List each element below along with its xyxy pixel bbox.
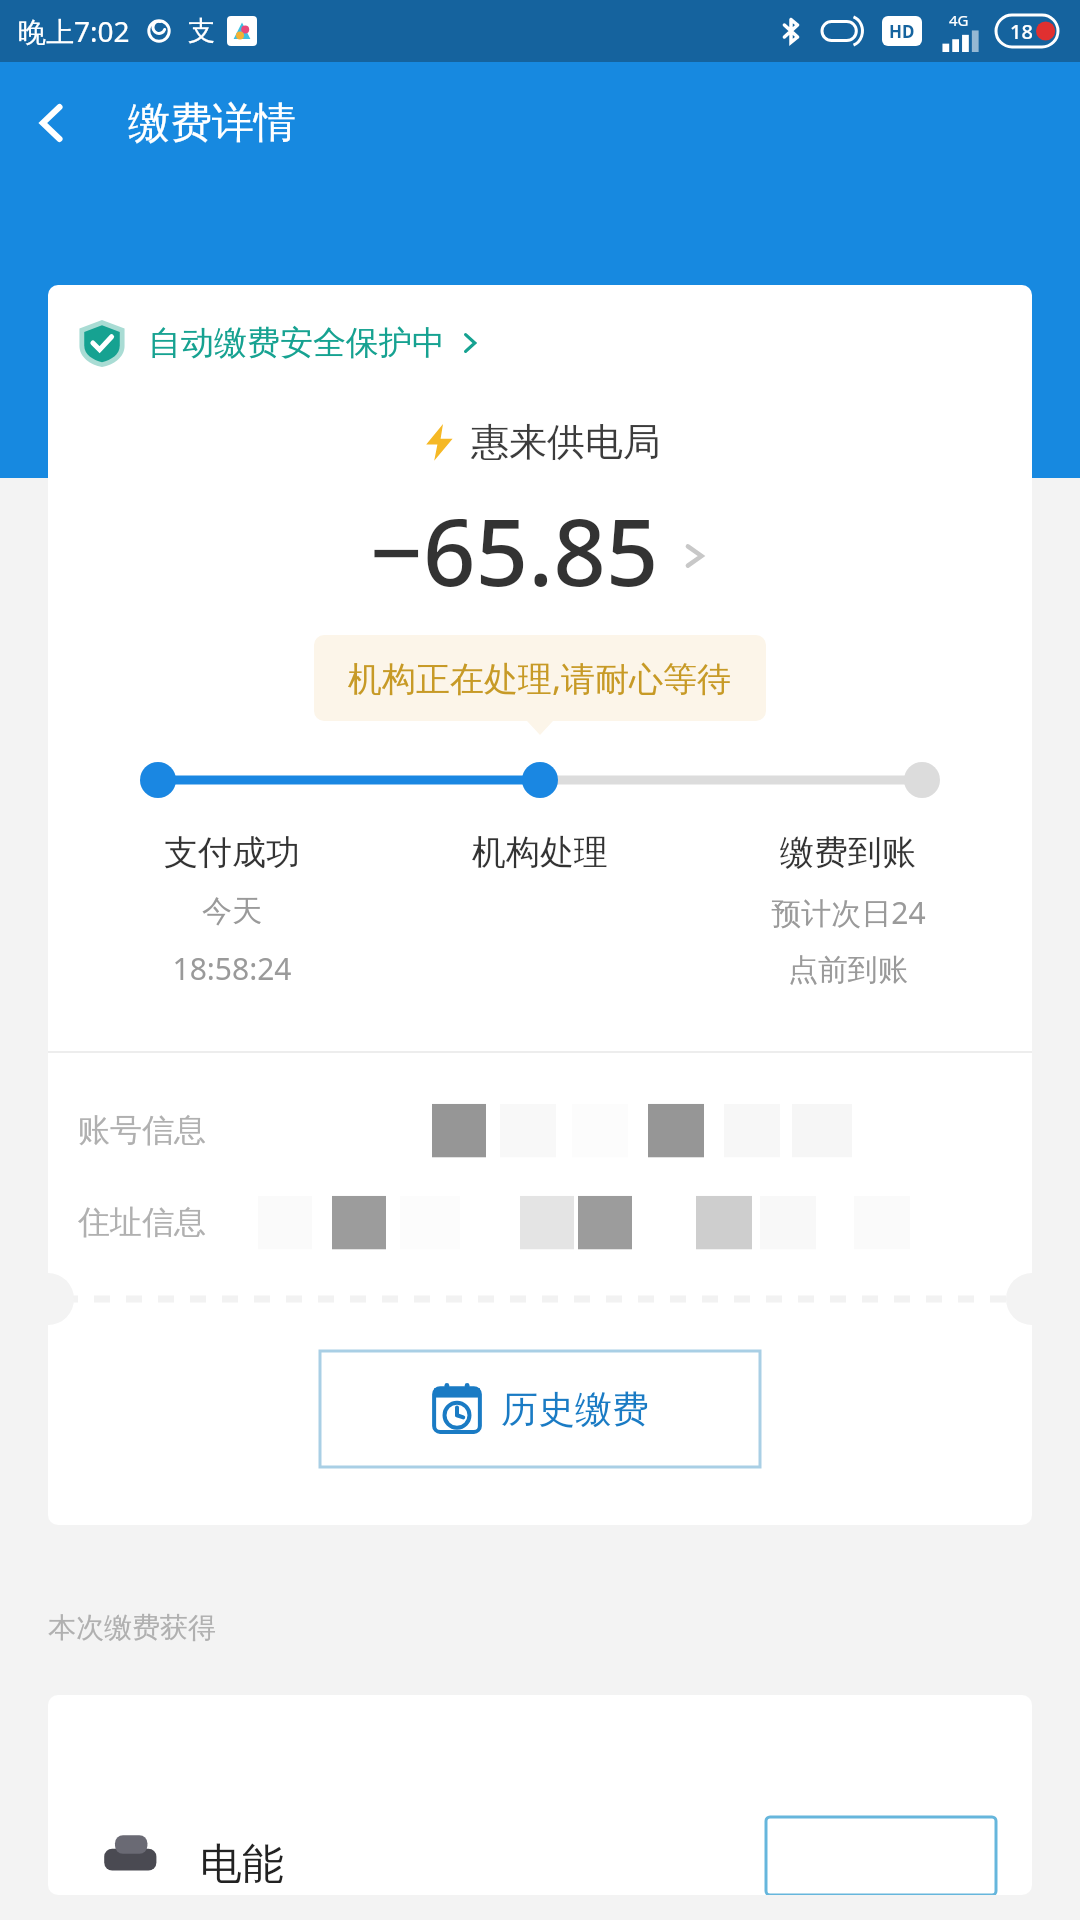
- staticText: HD: [889, 20, 915, 43]
- staticText: 惠来供电局: [471, 418, 661, 466]
- staticText: 18: [1010, 18, 1033, 45]
- staticText: 本次缴费获得: [48, 1610, 216, 1645]
- staticText: 自动缴费安全保护中: [148, 322, 445, 364]
- staticText: 缴费详情: [128, 97, 296, 150]
- staticText: 历史缴费: [501, 1386, 649, 1433]
- button[interactable]: 历史缴费: [320, 1351, 760, 1467]
- staticText: 18:58:24: [172, 948, 292, 989]
- staticText: 电能: [200, 1838, 284, 1891]
- staticText: 4G: [949, 10, 969, 30]
- staticText: 晚上7:02: [18, 12, 130, 50]
- staticText: 预计次日24: [771, 892, 926, 933]
- button[interactable]: −65.85: [48, 488, 1032, 613]
- staticText: 缴费到账: [780, 831, 916, 874]
- button[interactable]: 返回: [8, 75, 96, 171]
- staticText: 机构处理: [472, 831, 608, 874]
- button[interactable]: [766, 1817, 996, 1895]
- staticText: 点前到账: [788, 951, 908, 989]
- button[interactable]: 自动缴费安全保护中: [48, 285, 1032, 400]
- staticText: 住址信息: [78, 1202, 206, 1242]
- staticText: 今天: [202, 892, 262, 930]
- staticText: 支付成功: [164, 831, 300, 874]
- staticText: 机构正在处理,请耐心等待: [348, 655, 732, 701]
- staticText: 账号信息: [78, 1110, 206, 1150]
- staticText: 支: [188, 14, 215, 48]
- staticText: −65.85: [370, 488, 659, 613]
